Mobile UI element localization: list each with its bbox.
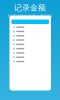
button[interactable] [13, 25, 48, 29]
staticText: 记录金额 [14, 3, 46, 13]
button[interactable] [13, 59, 48, 64]
button[interactable] [13, 34, 48, 38]
button[interactable] [13, 55, 48, 59]
button[interactable] [13, 46, 48, 51]
button[interactable] [11, 19, 49, 24]
button[interactable] [13, 38, 48, 42]
button[interactable] [13, 51, 48, 55]
button[interactable] [13, 42, 48, 46]
button[interactable] [13, 29, 48, 34]
staticText: 快速记录你的每一笔开销 [8, 14, 52, 19]
